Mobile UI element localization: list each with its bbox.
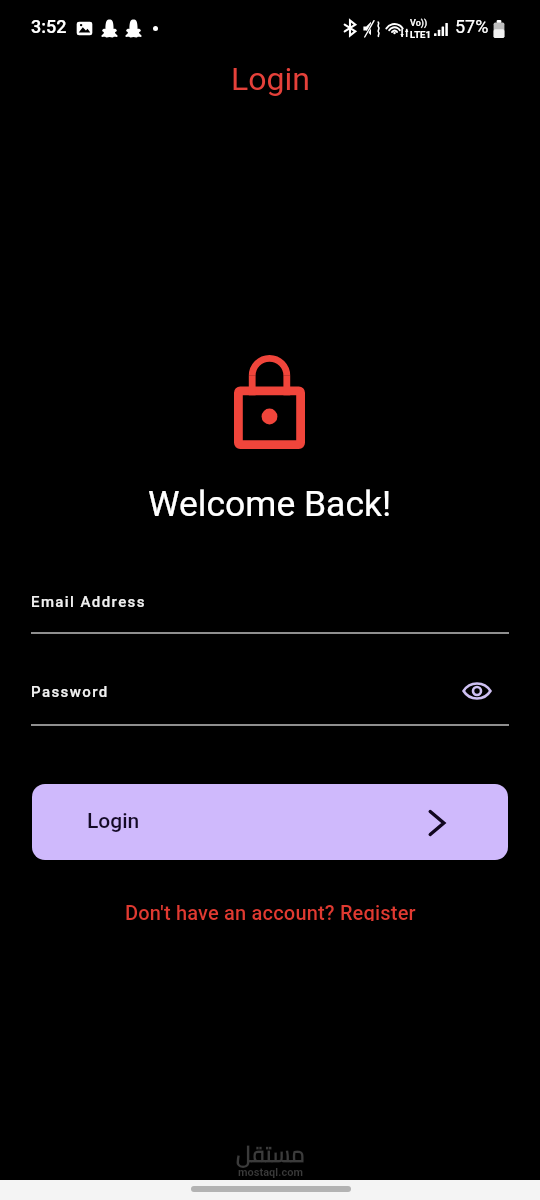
- staticText: Email Address: [31, 593, 146, 611]
- staticText: Vo)): [410, 18, 428, 29]
- staticText: Welcome Back!: [148, 483, 392, 525]
- staticText: Password: [31, 683, 109, 701]
- staticText: mostaql.com: [238, 1166, 303, 1179]
- staticText: Login: [87, 809, 140, 834]
- button[interactable]: Login: [32, 784, 508, 860]
- button[interactable]: Show password: [455, 669, 499, 713]
- staticText: Don't have an account? Register: [125, 901, 416, 921]
- staticText: مستقل: [236, 1133, 305, 1174]
- staticText: LTE1: [410, 29, 431, 40]
- staticText: Login: [231, 60, 310, 98]
- staticText: 57%: [455, 16, 489, 37]
- staticText: 3:52: [31, 16, 67, 37]
- button[interactable]: Don't have an account? Register: [117, 897, 424, 925]
